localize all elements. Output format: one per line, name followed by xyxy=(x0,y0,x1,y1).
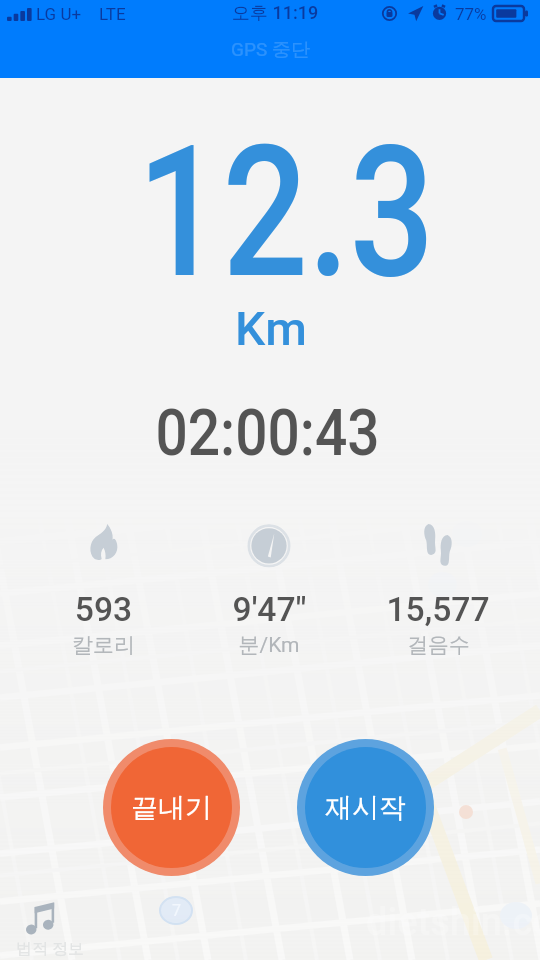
staticText: LG U+ xyxy=(36,4,82,24)
staticText: 법적 정보 xyxy=(16,939,84,959)
staticText: 분/Km xyxy=(238,632,300,658)
button[interactable]: GPS 중단 xyxy=(215,32,326,68)
staticText: 12.3 xyxy=(137,106,435,319)
staticText: 77% xyxy=(455,4,487,24)
button[interactable]: 15,577 걸음수 xyxy=(353,518,523,660)
button[interactable]: Music xyxy=(26,901,58,935)
staticText: 오후 11:19 xyxy=(232,2,319,25)
staticText: 칼로리 xyxy=(72,632,135,658)
staticText: LTE xyxy=(99,4,126,24)
staticText: 15,577 xyxy=(386,590,490,629)
button[interactable]: 재시작 xyxy=(297,739,434,876)
button[interactable]: 끝내기 xyxy=(103,739,240,876)
button[interactable]: 593 칼로리 xyxy=(18,518,188,660)
staticText: 593 xyxy=(74,590,132,629)
button[interactable]: 9'47" 분/Km xyxy=(184,518,354,660)
staticText: Km xyxy=(235,302,307,356)
staticText: 02:00:43 xyxy=(155,395,380,471)
staticText: 7 xyxy=(172,901,181,920)
staticText: 걸음수 xyxy=(407,632,470,658)
staticText: 끝내기 xyxy=(131,791,212,825)
staticText: dietshin.com xyxy=(366,900,540,945)
button[interactable]: 법적 정보 xyxy=(16,939,84,959)
staticText: GPS 중단 xyxy=(231,38,310,62)
staticText: 9'47" xyxy=(232,590,307,629)
staticText: 재시작 xyxy=(325,791,406,825)
